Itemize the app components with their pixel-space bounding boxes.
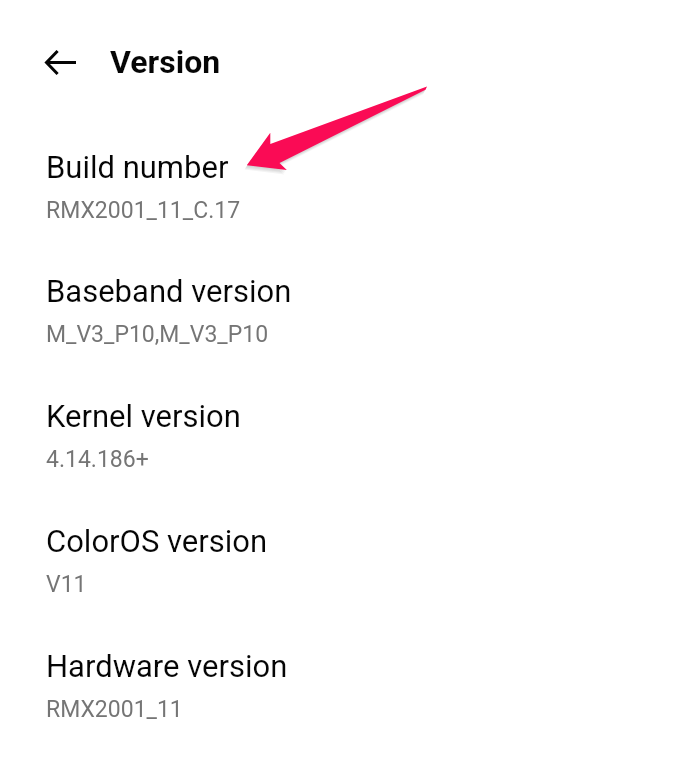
staticText: M_V3_P10,M_V3_P10	[46, 321, 269, 348]
staticText: Build number	[46, 149, 229, 185]
staticText: Version	[110, 43, 221, 81]
staticText: Baseband version	[46, 273, 292, 309]
staticText: ColorOS version	[46, 523, 268, 559]
button[interactable]: ColorOS version	[0, 486, 691, 611]
staticText: V11	[46, 571, 87, 598]
staticText: 4.14.186+	[46, 446, 149, 473]
button[interactable]: Navigate back	[35, 37, 86, 88]
staticText: Hardware version	[46, 648, 288, 684]
staticText: RMX2001_11_C.17	[46, 197, 241, 224]
button[interactable]: Baseband version	[0, 237, 691, 361]
button[interactable]: Kernel version	[0, 361, 691, 486]
button[interactable]: Build number	[0, 118, 691, 237]
staticText: RMX2001_11	[46, 696, 183, 723]
button[interactable]: Hardware version	[0, 611, 691, 736]
staticText: Kernel version	[46, 398, 241, 434]
